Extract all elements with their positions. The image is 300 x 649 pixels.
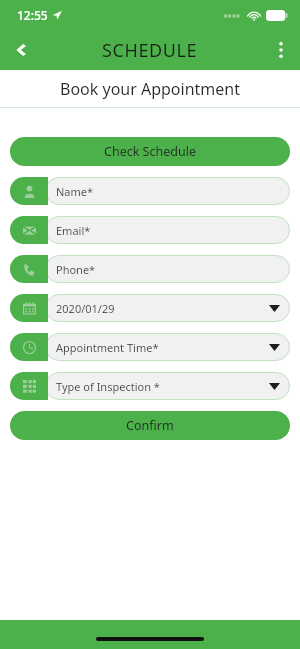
button[interactable]: More options: [262, 31, 300, 69]
staticText: 2020/01/29: [56, 301, 115, 316]
button[interactable]: Back: [0, 30, 40, 70]
staticText: Book your Appointment: [60, 78, 240, 100]
button[interactable]: Name*: [10, 177, 290, 205]
staticText: Type of Inspection *: [56, 379, 160, 394]
button[interactable]: Type of Inspection *: [10, 372, 290, 400]
staticText: Check Schedule: [104, 143, 196, 160]
staticText: Appointment Time*: [56, 340, 159, 355]
staticText: Phone*: [56, 262, 96, 277]
button[interactable]: Check Schedule: [10, 137, 290, 166]
staticText: Confirm: [126, 417, 174, 434]
staticText: SCHEDULE: [102, 38, 198, 63]
button[interactable]: Appointment Time*: [10, 333, 290, 361]
button[interactable]: Confirm: [10, 411, 290, 440]
button[interactable]: 2020/01/29: [10, 294, 290, 322]
staticText: Email*: [56, 223, 91, 238]
staticText: 12:55: [17, 7, 48, 23]
button[interactable]: Phone*: [10, 255, 290, 283]
button[interactable]: Email*: [10, 216, 290, 244]
staticText: Name*: [56, 184, 94, 199]
